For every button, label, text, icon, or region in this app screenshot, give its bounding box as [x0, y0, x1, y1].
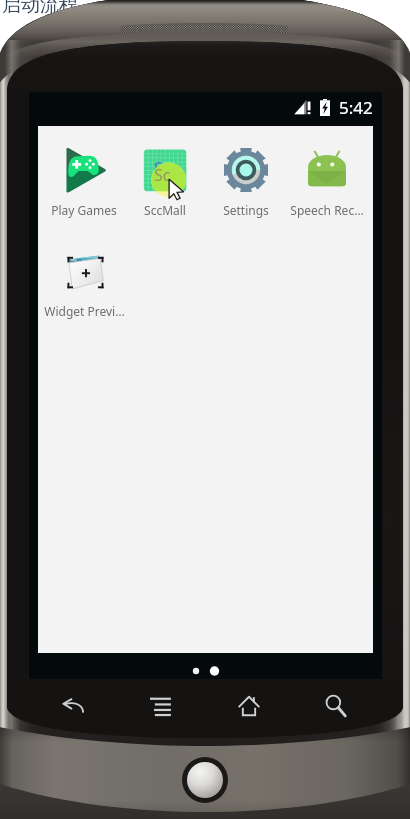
button[interactable]: Sc [124, 126, 205, 227]
staticText: Sc [154, 164, 171, 186]
staticText: Play Games [51, 202, 117, 218]
button[interactable]: Play Games [44, 126, 124, 227]
button[interactable]: Back [47, 686, 99, 726]
button[interactable]: Menu [135, 686, 187, 726]
button[interactable]: Home [223, 686, 275, 726]
button[interactable]: Speech Rec… [286, 126, 367, 227]
staticText: Settings [223, 202, 269, 218]
staticText: Widget Previ… [44, 303, 125, 319]
button[interactable]: Widget Previ… [44, 227, 125, 328]
staticText: Sc [154, 157, 171, 179]
staticText: 启动流程 [2, 0, 78, 17]
button[interactable]: Search [310, 686, 362, 726]
staticText: 5:42 [339, 96, 373, 119]
button[interactable]: Settings [205, 126, 286, 227]
staticText: Speech Rec… [290, 202, 364, 218]
staticText: SccMall [144, 202, 186, 218]
